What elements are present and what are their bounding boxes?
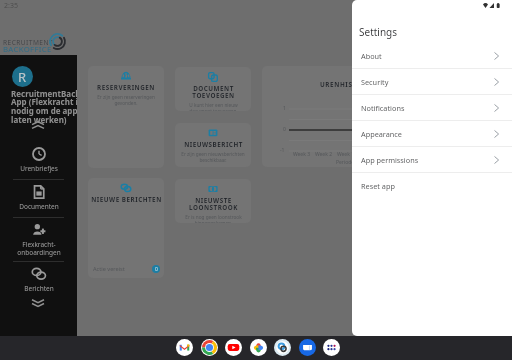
staticText: Periode <box>336 159 355 166</box>
other: Flexkracht onboardingen <box>32 223 46 237</box>
staticText: Appearance <box>361 129 402 139</box>
button[interactable]: Appearance <box>352 121 512 146</box>
button[interactable]: All apps <box>323 339 340 356</box>
other: Recruitment Backoffice <box>49 33 66 50</box>
staticText: Berichten <box>24 284 54 293</box>
staticText: Urenbriefjes <box>20 164 58 173</box>
other: Urenbriefjes <box>32 147 46 161</box>
staticText: DOCUMENT TOEVOEGEN <box>192 84 235 100</box>
staticText: Er is nog geen loonstrook binnengekomen. <box>185 214 242 223</box>
staticText: Settings <box>359 25 398 39</box>
staticText: RESERVERINGEN <box>97 83 155 92</box>
staticText: NIEUWSTE LOONSTROOK <box>189 196 238 212</box>
button[interactable]: About <box>352 43 512 68</box>
staticText: 0 <box>155 266 158 273</box>
button[interactable]: Flexkracht onboardingen <box>0 218 77 261</box>
staticText: Er zijn geen reserveringen gevonden. <box>97 94 155 107</box>
button[interactable]: YouTube <box>225 339 242 356</box>
staticText: U kunt hier een nieuw document toevoegen… <box>189 102 238 111</box>
button[interactable]: Meet <box>299 339 316 356</box>
button[interactable]: Chrome <box>201 339 218 356</box>
button[interactable]: Reset app <box>352 173 512 198</box>
button[interactable]: Photos <box>250 339 267 356</box>
staticText: Flexkracht- onboardingen <box>17 240 61 257</box>
button[interactable]: NIEUWE BERICHTEN <box>88 178 164 278</box>
button[interactable]: App permissions <box>352 147 512 172</box>
staticText: 2:35 <box>4 1 18 11</box>
other: Documenten <box>32 185 46 199</box>
button[interactable]: R <box>12 66 33 87</box>
staticText: BACKOFFICE <box>3 44 52 55</box>
staticText: 1 <box>283 105 286 112</box>
button[interactable]: RESERVERINGEN <box>88 66 164 168</box>
button[interactable]: NIEUWSTE LOONSTROOK <box>175 179 251 223</box>
staticText: R <box>18 68 27 86</box>
staticText: RECRUITMENT <box>3 38 54 47</box>
staticText: Documenten <box>19 202 59 211</box>
staticText: -1 <box>280 147 285 154</box>
staticText: NIEUWE BERICHTEN <box>91 195 162 204</box>
staticText: Security <box>361 77 389 87</box>
staticText: NIEUWSBERICHT <box>184 140 243 149</box>
staticText: Actie vereist <box>93 265 125 273</box>
staticText: Er zijn geen nieuwsberichten beschikbaar… <box>181 151 245 164</box>
staticText: About <box>361 51 382 61</box>
button[interactable]: Berichten <box>0 262 77 299</box>
staticText: 0 <box>283 126 286 133</box>
button[interactable]: Notifications <box>352 95 512 120</box>
staticText: Reset app <box>361 181 395 191</box>
button[interactable]: Documenten <box>0 180 77 217</box>
button[interactable]: Security <box>352 69 512 94</box>
staticText: Week 3 <box>293 151 311 158</box>
button[interactable]: NIEUWSBERICHT <box>175 123 251 167</box>
staticText: URENHISTORIE <box>320 80 375 89</box>
button[interactable]: DOCUMENT TOEVOEGEN <box>175 67 251 111</box>
button[interactable]: URENHISTORIE <box>262 66 432 167</box>
staticText: App permissions <box>361 155 419 165</box>
staticText: Week 2 <box>315 151 333 158</box>
staticText: Notifications <box>361 103 405 113</box>
staticText: RecruitmentBackoffice App (Flexkracht is… <box>11 88 77 125</box>
button[interactable]: Urenbriefjes <box>0 142 77 179</box>
button[interactable]: Gmail <box>176 339 193 356</box>
button[interactable]: App <box>274 339 291 356</box>
other: Berichten <box>32 267 46 281</box>
staticText: Week 1 <box>337 151 355 158</box>
